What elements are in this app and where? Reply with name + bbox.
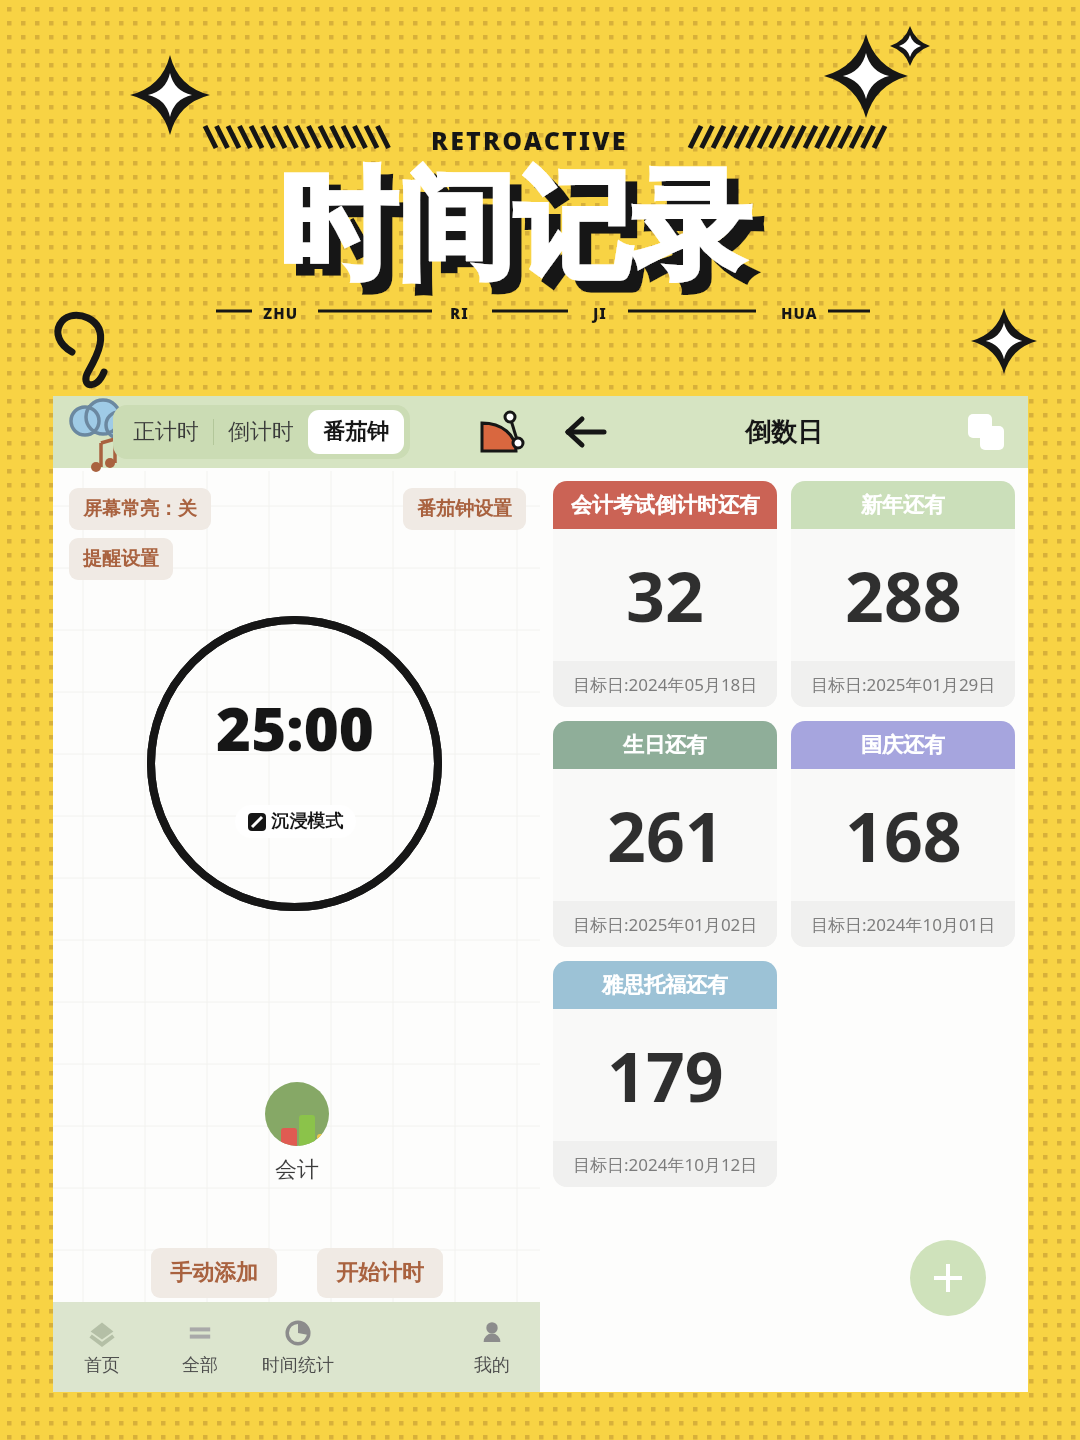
button[interactable]: 雅思托福还有 bbox=[553, 961, 777, 1187]
button[interactable]: 国庆还有 bbox=[791, 721, 1015, 947]
staticText: 开始计时 bbox=[336, 1259, 424, 1287]
button[interactable]: 番茄钟设置 bbox=[403, 488, 526, 530]
staticText: HUA bbox=[781, 303, 818, 323]
staticText: 新年还有 bbox=[861, 492, 945, 518]
staticText: 179 bbox=[607, 1029, 724, 1122]
staticText: 时间记录 bbox=[278, 152, 750, 301]
button[interactable]: 时间统计 bbox=[249, 1302, 346, 1392]
staticText: 屏幕常亮：关 bbox=[83, 497, 197, 521]
button[interactable]: Statistics bbox=[476, 409, 522, 455]
staticText: 提醒设置 bbox=[83, 547, 159, 571]
button[interactable]: Cloud music bbox=[75, 409, 121, 455]
staticText: ZHU bbox=[263, 303, 299, 323]
staticText: 时间统计 bbox=[262, 1354, 334, 1377]
staticText: 目标日:2024年10月12日 bbox=[573, 1153, 758, 1176]
staticText: 倒数日 bbox=[745, 416, 823, 449]
staticText: 168 bbox=[845, 789, 962, 882]
button[interactable]: 全部 bbox=[151, 1302, 249, 1392]
staticText: 32 bbox=[626, 549, 704, 642]
staticText: 番茄钟 bbox=[323, 418, 389, 446]
button[interactable]: 我的 bbox=[443, 1302, 540, 1392]
staticText: 手动添加 bbox=[170, 1259, 258, 1287]
staticText: 倒计时 bbox=[228, 418, 294, 446]
staticText: 会计考试倒计时还有 bbox=[571, 492, 760, 518]
staticText: 会计 bbox=[275, 1156, 319, 1184]
button[interactable]: 新年还有 bbox=[791, 481, 1015, 707]
staticText: 生日还有 bbox=[623, 732, 707, 758]
button[interactable]: 提醒设置 bbox=[69, 538, 173, 580]
button[interactable]: Back bbox=[560, 409, 606, 455]
staticText: 国庆还有 bbox=[861, 732, 945, 758]
staticText: 目标日:2024年05月18日 bbox=[573, 673, 758, 696]
button[interactable]: Add countdown bbox=[910, 1240, 986, 1316]
staticText: 首页 bbox=[84, 1354, 120, 1377]
staticText: 全部 bbox=[182, 1354, 218, 1377]
button[interactable]: Manage bbox=[966, 412, 1006, 452]
staticText: 261 bbox=[607, 789, 724, 882]
button[interactable]: 沉浸模式 bbox=[235, 805, 356, 838]
staticText: 目标日:2025年01月29日 bbox=[811, 673, 996, 696]
staticText: 沉浸模式 bbox=[271, 810, 343, 833]
button[interactable]: 首页 bbox=[53, 1302, 151, 1392]
button[interactable]: 开始计时 bbox=[317, 1248, 443, 1298]
staticText: 番茄钟设置 bbox=[417, 497, 512, 521]
button[interactable]: 手动添加 bbox=[151, 1248, 277, 1298]
button[interactable]: 番茄钟 bbox=[308, 410, 404, 454]
staticText: 25:00 bbox=[216, 687, 374, 769]
staticText: 时间记录 bbox=[290, 164, 762, 313]
button[interactable]: 倒计时 bbox=[214, 410, 308, 454]
button[interactable]: 生日还有 bbox=[553, 721, 777, 947]
staticText: 雅思托福还有 bbox=[602, 972, 728, 998]
button[interactable]: 屏幕常亮：关 bbox=[69, 488, 211, 530]
staticText: 正计时 bbox=[133, 418, 199, 446]
button[interactable]: 正计时 bbox=[119, 410, 213, 454]
staticText: JI bbox=[593, 303, 607, 323]
staticText: 目标日:2025年01月02日 bbox=[573, 913, 758, 936]
staticText: RETROACTIVE bbox=[431, 123, 628, 157]
staticText: RI bbox=[450, 303, 469, 323]
button[interactable]: 会计考试倒计时还有 bbox=[553, 481, 777, 707]
staticText: 我的 bbox=[474, 1354, 510, 1377]
staticText: 目标日:2024年10月01日 bbox=[811, 913, 996, 936]
staticText: 288 bbox=[845, 549, 962, 642]
button[interactable]: Accounting category bbox=[265, 1082, 329, 1146]
